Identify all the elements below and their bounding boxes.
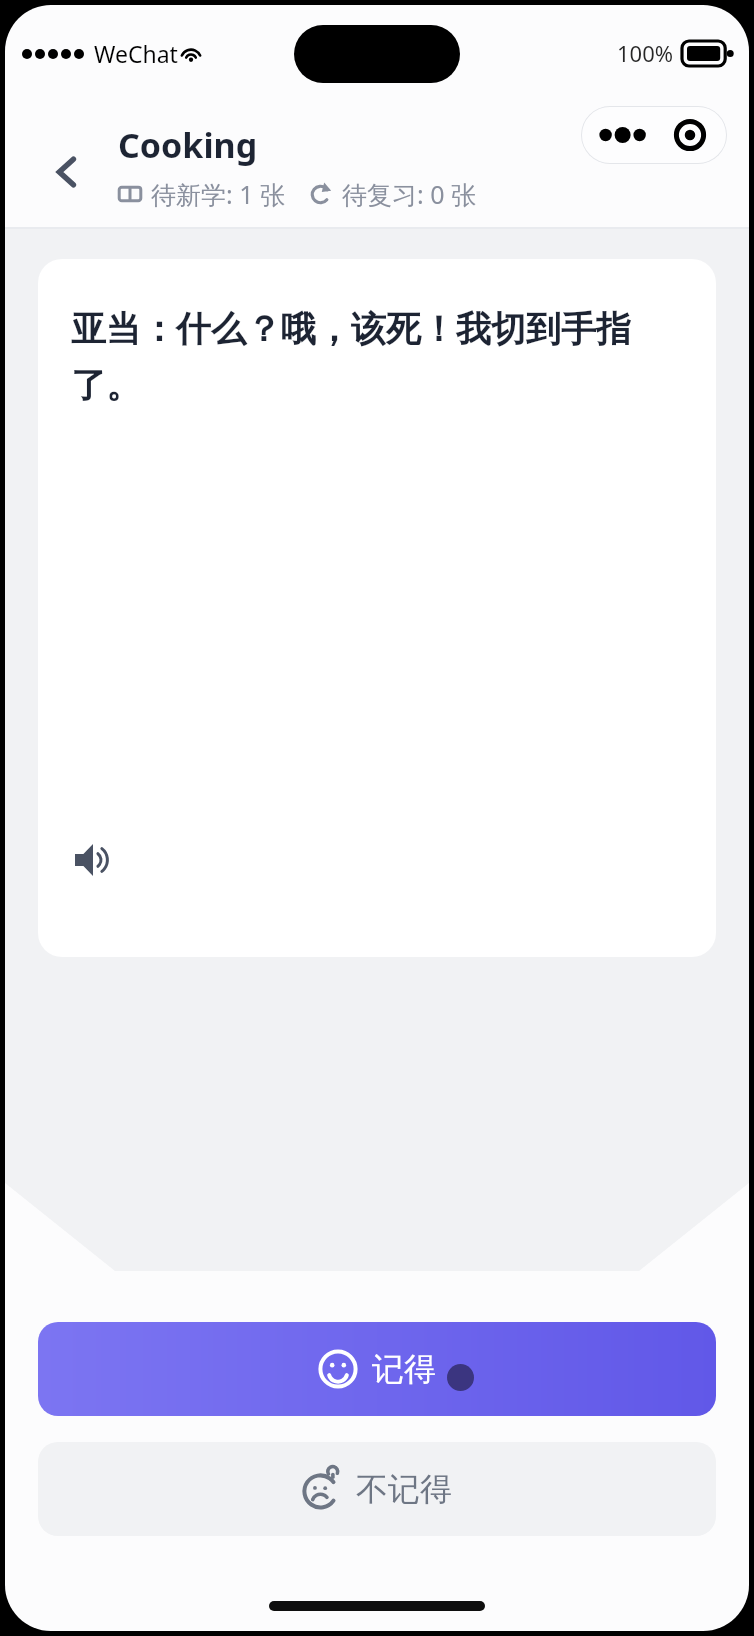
button[interactable]: More options	[581, 106, 727, 164]
staticText: Cooking	[118, 122, 258, 168]
button[interactable]: 亚当：什么？哦，该死！我切到手指了。	[38, 259, 716, 957]
staticText: 亚当：什么？哦，该死！我切到手指了。	[71, 307, 686, 407]
staticText: WeChat	[94, 38, 178, 69]
button[interactable]: 不记得	[38, 1442, 716, 1536]
staticText: 不记得	[356, 1469, 452, 1509]
staticText: 待复习: 0 张	[342, 177, 477, 211]
button[interactable]: Back	[39, 144, 95, 200]
button[interactable]: 记得	[38, 1322, 716, 1416]
staticText: 待新学: 1 张	[151, 177, 286, 211]
staticText: 100%	[617, 38, 674, 68]
button[interactable]: Play audio	[64, 831, 122, 889]
staticText: 记得	[372, 1349, 436, 1389]
